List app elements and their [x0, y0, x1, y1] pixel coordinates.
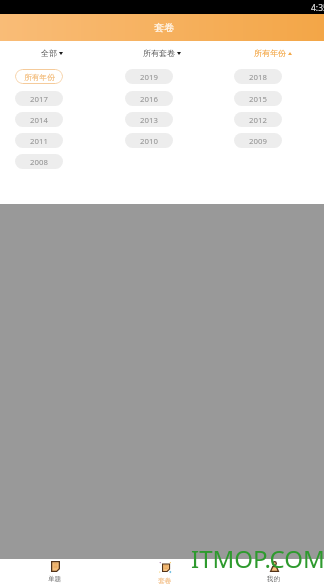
staticText: 2010: [140, 136, 158, 147]
button[interactable]: 2016: [125, 91, 173, 106]
staticText: 我的: [267, 575, 281, 583]
staticText: 套卷: [154, 21, 174, 34]
staticText: 2019: [140, 72, 158, 83]
staticText: 2012: [249, 115, 267, 126]
button[interactable]: 2010: [125, 133, 173, 148]
button[interactable]: 所有年份: [15, 69, 63, 84]
button[interactable]: 我的: [220, 559, 324, 585]
staticText: 2008: [30, 157, 48, 168]
staticText: ITMOP.COM: [191, 542, 324, 575]
button[interactable]: 2018: [234, 69, 282, 84]
button[interactable]: 套卷: [111, 559, 219, 585]
button[interactable]: 2019: [125, 69, 173, 84]
staticText: 套卷: [158, 577, 172, 585]
staticText: 单题: [48, 575, 62, 583]
staticText: 2018: [249, 72, 267, 83]
staticText: 4:35: [311, 2, 324, 14]
button[interactable]: 2013: [125, 112, 173, 127]
button[interactable]: 所有年份: [216, 41, 324, 63]
button[interactable]: 2012: [234, 112, 282, 127]
staticText: 2009: [249, 136, 267, 147]
button[interactable]: 2011: [15, 133, 63, 148]
staticText: 2015: [249, 94, 267, 105]
button[interactable]: 2009: [234, 133, 282, 148]
button[interactable]: 全部: [0, 41, 108, 63]
button[interactable]: 所有套卷: [108, 41, 216, 63]
staticText: 2016: [140, 94, 158, 105]
staticText: 所有年份: [24, 73, 55, 83]
staticText: 全部: [41, 48, 57, 58]
staticText: 所有年份: [254, 48, 286, 58]
button[interactable]: 2014: [15, 112, 63, 127]
staticText: 2013: [140, 115, 158, 126]
staticText: 所有套卷: [143, 48, 175, 58]
button[interactable]: 单题: [1, 559, 109, 585]
staticText: 2017: [30, 94, 48, 105]
staticText: 2014: [30, 115, 48, 126]
staticText: 2011: [30, 136, 48, 147]
button[interactable]: 2017: [15, 91, 63, 106]
button[interactable]: 2008: [15, 154, 63, 169]
button[interactable]: 2015: [234, 91, 282, 106]
